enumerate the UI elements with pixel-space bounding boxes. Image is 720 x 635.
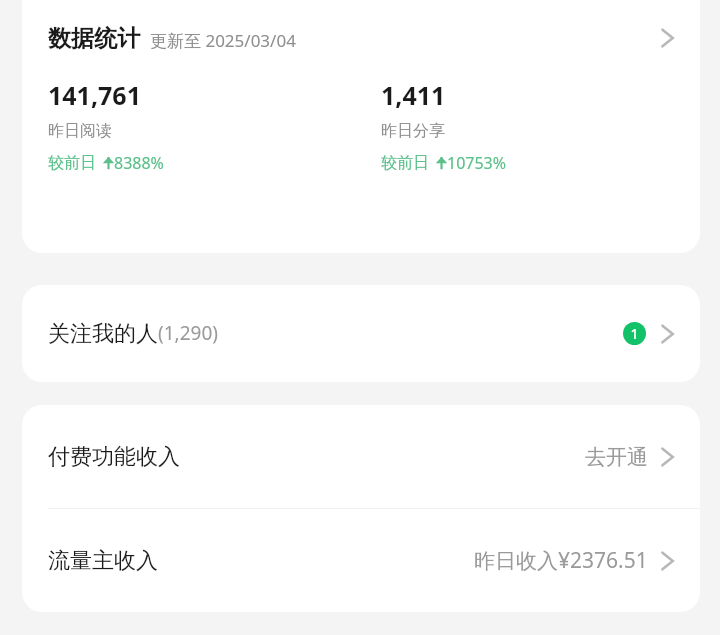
staticText: 昨日分享 — [381, 121, 445, 141]
staticText: 141,761 — [48, 78, 141, 112]
staticText: 8388% — [114, 152, 164, 174]
button[interactable]: 流量主收入 — [22, 509, 700, 612]
button[interactable]: 付费功能收入 — [22, 405, 700, 508]
staticText: 较前日 — [381, 153, 429, 173]
staticText: 较前日 — [48, 153, 96, 173]
other: 开通付费功能 — [654, 440, 688, 474]
staticText: 更新至 2025/03/04 — [150, 29, 296, 52]
staticText: 去开通 — [585, 444, 648, 470]
staticText: 付费功能收入 — [48, 443, 180, 471]
button[interactable]: 数据统计 — [22, 0, 700, 76]
button[interactable]: 关注我的人 — [22, 285, 700, 382]
staticText: 数据统计 — [48, 24, 140, 53]
staticText: 关注我的人 — [48, 320, 158, 348]
other: 查看数据统计详情 — [654, 21, 688, 55]
other: 查看流量主收入 — [654, 544, 688, 578]
staticText: 1 — [630, 324, 639, 343]
other: 查看关注我的人 — [654, 317, 688, 351]
staticText: 1,411 — [381, 78, 446, 112]
staticText: 流量主收入 — [48, 547, 158, 575]
staticText: (1,290) — [158, 320, 218, 346]
staticText: 昨日阅读 — [48, 121, 112, 141]
staticText: 昨日收入¥2376.51 — [474, 546, 648, 575]
staticText: 10753% — [447, 152, 507, 174]
